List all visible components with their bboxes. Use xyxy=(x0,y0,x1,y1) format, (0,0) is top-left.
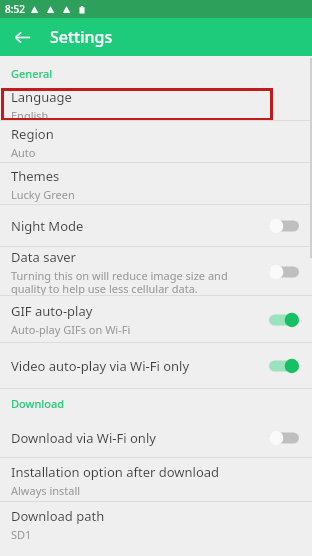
button[interactable]: Data saver xyxy=(265,257,303,287)
staticText: English xyxy=(11,108,49,121)
button[interactable]: GIF auto-play xyxy=(0,296,312,343)
staticText: Video auto-play via Wi-Fi only xyxy=(11,357,190,375)
staticText: Download xyxy=(11,396,65,411)
staticText: Themes xyxy=(11,167,60,185)
staticText: GIF auto-play xyxy=(11,302,93,320)
staticText: Settings xyxy=(50,26,113,48)
button[interactable]: Back xyxy=(6,21,38,53)
button[interactable]: Download via Wi-Fi only xyxy=(0,418,312,458)
staticText: Turning this on will reduce image size a… xyxy=(11,268,259,296)
staticText: Download via Wi-Fi only xyxy=(11,429,156,447)
staticText: Data saver xyxy=(11,248,76,266)
staticText: Auto xyxy=(11,145,36,160)
staticText: SD1 xyxy=(11,527,32,542)
button[interactable]: Download path xyxy=(0,502,312,546)
staticText: Night Mode xyxy=(11,217,84,235)
staticText: Always install xyxy=(11,483,81,498)
button[interactable]: Video auto-play via Wi-Fi only xyxy=(265,351,303,381)
staticText: Language xyxy=(11,88,72,106)
button[interactable]: Region xyxy=(0,121,312,163)
button[interactable]: Language xyxy=(0,88,312,121)
staticText: Auto-play GIFs on Wi-Fi xyxy=(11,322,131,337)
button[interactable]: Data saver xyxy=(0,247,312,296)
button[interactable]: GIF auto-play xyxy=(265,305,303,335)
button[interactable]: Installation option after download xyxy=(0,458,312,502)
button[interactable]: Download via Wi-Fi only xyxy=(265,423,303,453)
staticText: Download path xyxy=(11,507,105,525)
button[interactable]: Themes xyxy=(0,163,312,205)
staticText: Lucky Green xyxy=(11,187,75,202)
button[interactable]: Night Mode xyxy=(265,211,303,241)
staticText: 8:52 xyxy=(5,2,25,16)
button[interactable]: Night Mode xyxy=(0,205,312,247)
button[interactable]: Video auto-play via Wi-Fi only xyxy=(0,343,312,389)
staticText: Region xyxy=(11,125,54,143)
staticText: General xyxy=(11,66,53,81)
staticText: Installation option after download xyxy=(11,463,220,481)
